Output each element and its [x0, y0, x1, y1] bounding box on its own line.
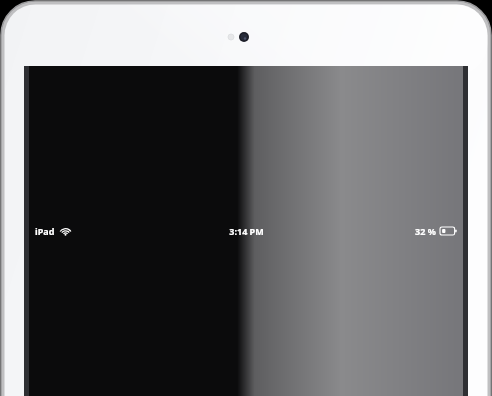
staticText: iPad	[35, 225, 55, 237]
button[interactable]: Battery 32 percent	[415, 225, 457, 237]
button[interactable]: Carrier and Wi-Fi status	[35, 225, 71, 237]
staticText: 3:14 PM	[229, 225, 264, 237]
staticText: 32 %	[415, 225, 436, 237]
